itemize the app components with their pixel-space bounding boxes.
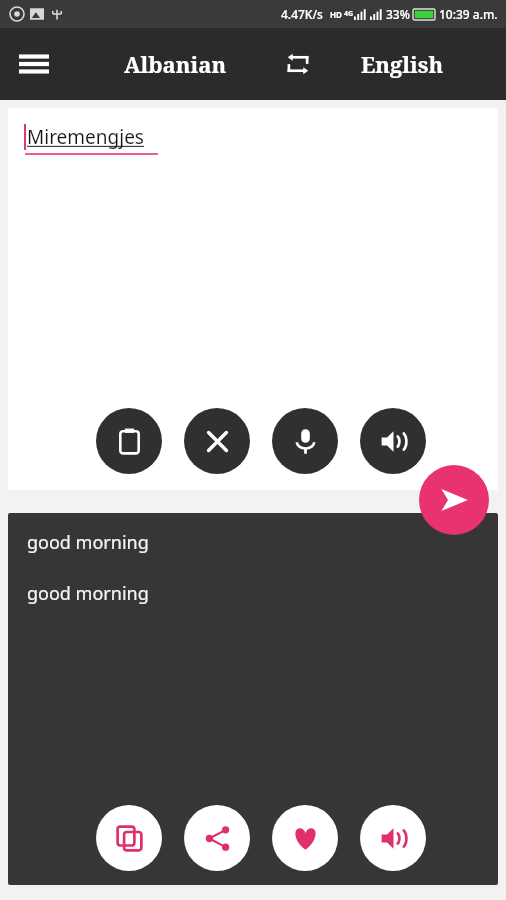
button[interactable]: Clear [184,408,250,474]
staticText: 4.47K/s [281,6,323,22]
staticText: 4G [344,9,354,19]
button[interactable]: Copy [96,805,162,871]
staticText: English [361,49,444,79]
button[interactable]: Menu [12,42,56,86]
button[interactable]: Miremengjes [24,124,144,150]
button[interactable]: Favourite [272,805,338,871]
staticText: good morning [27,581,149,606]
button[interactable]: Swap languages [275,41,321,87]
staticText: HD [330,9,342,20]
button[interactable]: Speak translation [360,805,426,871]
button[interactable]: Share [184,805,250,871]
staticText: Miremengjes [27,124,144,150]
button[interactable]: Translate [419,465,489,535]
button[interactable]: Voice input [272,408,338,474]
staticText: 33% [386,6,410,22]
button[interactable]: Paste [96,408,162,474]
staticText: good morning [27,530,149,555]
staticText: Albanian [124,49,227,79]
button[interactable]: English [355,41,450,87]
button[interactable]: Speak [360,408,426,474]
staticText: 10:39 a.m. [439,6,498,22]
button[interactable]: Albanian [118,41,233,87]
